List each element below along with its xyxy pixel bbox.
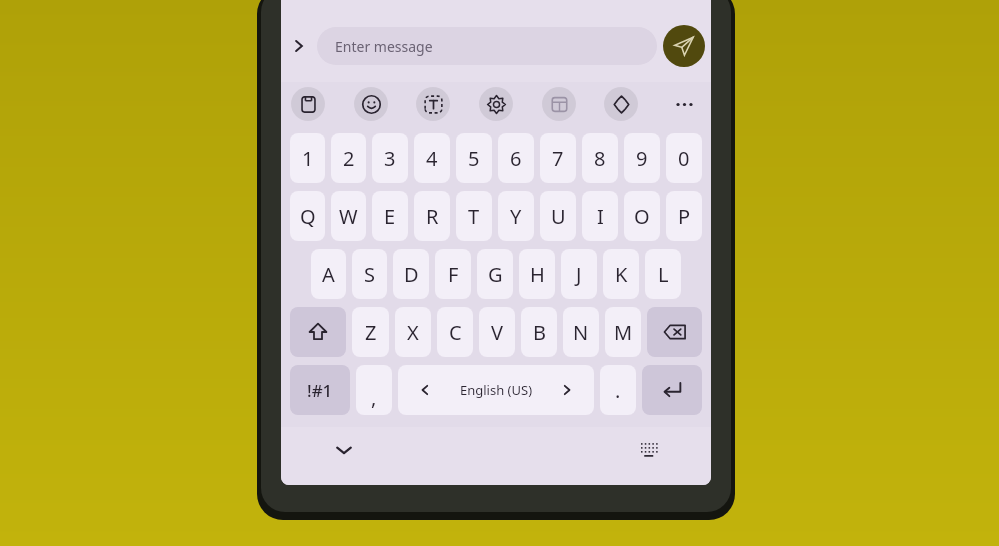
button[interactable]: Change keyboard: [633, 433, 667, 467]
button[interactable]: P: [666, 191, 702, 241]
button[interactable]: J: [561, 249, 597, 299]
staticText: 9: [636, 145, 648, 172]
button[interactable]: Z: [352, 307, 389, 357]
button[interactable]: 0: [666, 133, 702, 183]
button[interactable]: I: [582, 191, 618, 241]
button[interactable]: 9: [624, 133, 660, 183]
button[interactable]: O: [624, 191, 660, 241]
button[interactable]: .: [600, 365, 636, 415]
staticText: W: [339, 203, 358, 230]
staticText: J: [576, 261, 582, 288]
staticText: V: [491, 319, 503, 346]
button[interactable]: 2: [331, 133, 366, 183]
button[interactable]: ,: [356, 365, 392, 415]
staticText: Z: [365, 319, 377, 346]
staticText: D: [404, 261, 419, 288]
button[interactable]: 1: [290, 133, 325, 183]
staticText: M: [614, 319, 633, 346]
staticText: 8: [594, 145, 606, 172]
staticText: Q: [300, 203, 316, 230]
staticText: I: [597, 203, 604, 230]
button[interactable]: !#1: [290, 365, 350, 415]
staticText: S: [364, 261, 375, 288]
button[interactable]: Y: [498, 191, 534, 241]
staticText: 0: [678, 145, 690, 172]
button[interactable]: A: [311, 249, 346, 299]
button[interactable]: Q: [290, 191, 325, 241]
staticText: 6: [510, 145, 522, 172]
button[interactable]: Enter message: [317, 27, 657, 65]
button[interactable]: R: [414, 191, 450, 241]
staticText: H: [530, 261, 545, 288]
button[interactable]: textx: [416, 87, 450, 121]
button[interactable]: S: [352, 249, 387, 299]
button[interactable]: N: [563, 307, 599, 357]
staticText: English (US): [460, 381, 533, 399]
staticText: F: [448, 261, 459, 288]
staticText: 4: [426, 145, 438, 172]
staticText: L: [658, 261, 669, 288]
button[interactable]: W: [331, 191, 366, 241]
staticText: C: [449, 319, 462, 346]
button[interactable]: Backspace: [647, 307, 702, 357]
button[interactable]: English (US): [398, 365, 594, 415]
button[interactable]: M: [605, 307, 641, 357]
button[interactable]: Send: [657, 10, 711, 82]
button[interactable]: D: [393, 249, 429, 299]
staticText: 1: [302, 145, 314, 172]
button[interactable]: calc: [542, 87, 576, 121]
staticText: X: [407, 319, 419, 346]
button[interactable]: Shift: [290, 307, 346, 357]
button[interactable]: Expand: [281, 21, 317, 71]
button[interactable]: V: [479, 307, 515, 357]
staticText: .: [615, 377, 621, 404]
button[interactable]: H: [519, 249, 555, 299]
staticText: ,: [371, 384, 377, 411]
button[interactable]: 5: [456, 133, 492, 183]
staticText: 7: [552, 145, 564, 172]
button[interactable]: U: [540, 191, 576, 241]
staticText: U: [551, 203, 566, 230]
staticText: A: [322, 261, 335, 288]
staticText: N: [573, 319, 589, 346]
button[interactable]: 4: [414, 133, 450, 183]
button[interactable]: more: [667, 87, 701, 121]
button[interactable]: Hide keyboard: [327, 433, 361, 467]
button[interactable]: 3: [372, 133, 408, 183]
button[interactable]: E: [372, 191, 408, 241]
button[interactable]: K: [603, 249, 639, 299]
button[interactable]: C: [437, 307, 473, 357]
button[interactable]: settings: [479, 87, 513, 121]
staticText: O: [634, 203, 650, 230]
staticText: !#1: [307, 379, 333, 402]
button[interactable]: Enter: [642, 365, 702, 415]
button[interactable]: 8: [582, 133, 618, 183]
staticText: G: [488, 261, 503, 288]
staticText: Enter message: [335, 37, 433, 56]
staticText: P: [678, 203, 691, 230]
button[interactable]: L: [645, 249, 681, 299]
staticText: Y: [510, 203, 522, 230]
staticText: 2: [343, 145, 355, 172]
staticText: E: [384, 203, 396, 230]
button[interactable]: G: [477, 249, 513, 299]
button[interactable]: emoji: [354, 87, 388, 121]
staticText: T: [468, 203, 480, 230]
button[interactable]: clipboard: [291, 87, 325, 121]
staticText: K: [615, 261, 628, 288]
staticText: 5: [468, 145, 480, 172]
button[interactable]: X: [395, 307, 431, 357]
staticText: B: [533, 319, 546, 346]
button[interactable]: resize: [604, 87, 638, 121]
staticText: 3: [384, 145, 396, 172]
button[interactable]: F: [435, 249, 471, 299]
button[interactable]: 7: [540, 133, 576, 183]
button[interactable]: B: [521, 307, 557, 357]
staticText: R: [426, 203, 439, 230]
button[interactable]: 6: [498, 133, 534, 183]
button[interactable]: T: [456, 191, 492, 241]
